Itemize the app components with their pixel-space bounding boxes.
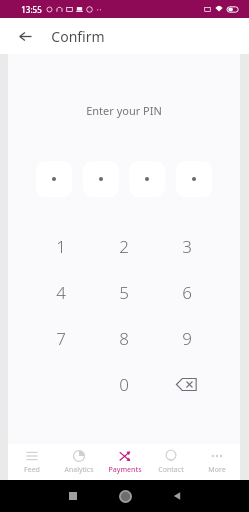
staticText: 8 — [119, 327, 129, 350]
button[interactable]: 4 — [30, 269, 92, 315]
staticText: 2 — [119, 235, 129, 258]
button[interactable]: 7 — [30, 315, 92, 361]
staticText: 1 — [56, 235, 66, 258]
staticText: 6 — [182, 281, 192, 304]
button[interactable]: Feed — [8, 444, 55, 480]
staticText: Feed — [24, 465, 40, 475]
staticText: 5 — [119, 281, 129, 304]
staticText: 4 — [56, 281, 66, 304]
staticText: 13:55 — [21, 4, 42, 15]
button[interactable]: Back — [10, 21, 40, 51]
staticText: 3 — [182, 235, 192, 258]
staticText: Contact — [158, 465, 184, 475]
staticText: 7 — [56, 327, 66, 350]
staticText: Analytics — [64, 465, 94, 475]
button[interactable]: 1 — [30, 223, 92, 269]
button[interactable]: 3 — [155, 223, 218, 269]
staticText: Enter your PIN — [86, 103, 162, 118]
button[interactable]: Contact — [148, 444, 194, 480]
button[interactable]: Payments — [102, 444, 148, 480]
button[interactable]: 6 — [155, 269, 218, 315]
button[interactable]: Home — [108, 480, 142, 512]
button[interactable]: 2 — [92, 223, 155, 269]
staticText: More — [208, 465, 226, 475]
staticText: 0 — [119, 373, 129, 396]
button[interactable]: 5 — [92, 269, 155, 315]
button[interactable]: More — [194, 444, 240, 480]
button[interactable]: 0 — [92, 361, 155, 407]
button[interactable]: 9 — [155, 315, 218, 361]
button[interactable]: Delete — [155, 361, 218, 407]
button[interactable]: 8 — [92, 315, 155, 361]
staticText: Confirm — [51, 27, 105, 46]
button[interactable]: Back — [160, 480, 194, 512]
button[interactable]: Analytics — [55, 444, 102, 480]
staticText: Payments — [108, 465, 142, 475]
button[interactable]: Recents — [56, 480, 90, 512]
staticText: 9 — [182, 327, 192, 350]
